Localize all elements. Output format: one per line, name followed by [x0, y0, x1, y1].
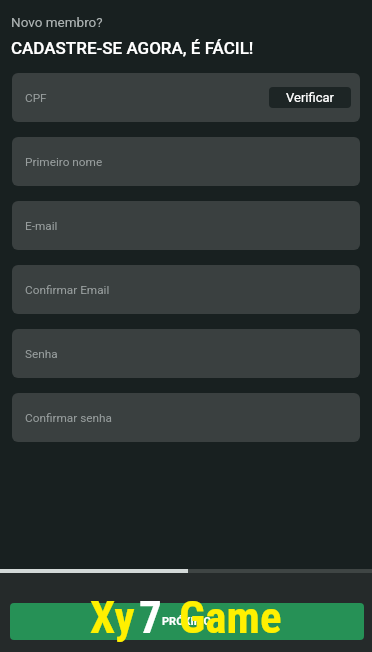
button[interactable]: E-mail	[12, 201, 360, 250]
button[interactable]: Confirmar senha	[12, 393, 360, 442]
staticText: CADASTRE-SE AGORA, É FÁCIL!	[11, 38, 254, 58]
button[interactable]: PRÓXIMO	[10, 603, 364, 640]
button[interactable]: CPF	[12, 73, 360, 122]
button[interactable]: Confirmar Email	[12, 265, 360, 314]
staticText: PRÓXIMO	[162, 615, 212, 628]
button[interactable]: Primeiro nome	[12, 137, 360, 186]
staticText: Confirmar Email	[25, 283, 110, 297]
staticText: 7	[139, 591, 162, 644]
staticText: Senha	[25, 347, 58, 361]
button[interactable]: Verificar	[269, 87, 351, 108]
staticText: Novo membro?	[11, 14, 103, 30]
staticText: Verificar	[286, 90, 334, 105]
staticText: Game	[179, 591, 282, 644]
button[interactable]: Senha	[12, 329, 360, 378]
staticText: Confirmar senha	[25, 411, 112, 425]
staticText: Primeiro nome	[25, 155, 103, 169]
staticText: CPF	[25, 91, 47, 105]
staticText: Xy	[90, 591, 135, 644]
staticText: E-mail	[25, 219, 58, 233]
